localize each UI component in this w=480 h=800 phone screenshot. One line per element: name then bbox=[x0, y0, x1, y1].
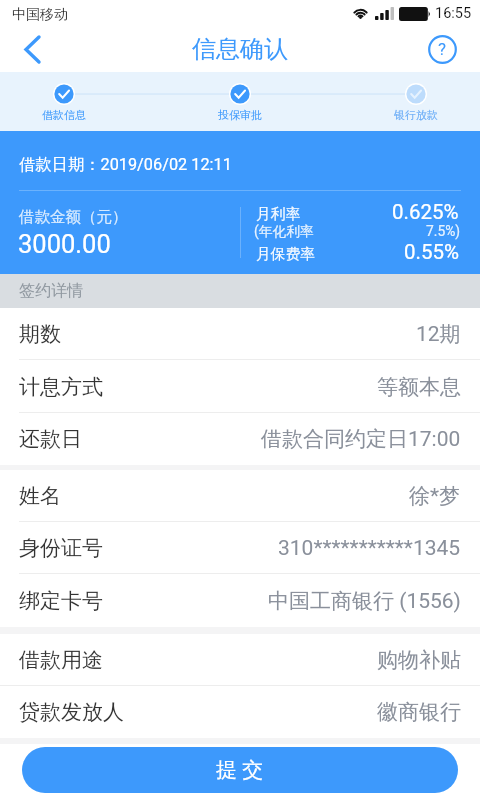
staticText: 310***********1345 bbox=[278, 536, 461, 561]
staticText: 借款用途 bbox=[19, 647, 103, 673]
staticText: 月保费率 bbox=[256, 245, 315, 264]
staticText: 徐*梦 bbox=[409, 483, 461, 509]
staticText: 投保审批 bbox=[218, 108, 262, 122]
button[interactable]: 提 交 bbox=[22, 747, 458, 793]
button[interactable]: Back bbox=[0, 27, 52, 72]
staticText: ? bbox=[438, 39, 447, 59]
button[interactable]: 绑定卡号 bbox=[0, 574, 480, 627]
button[interactable]: 期数 bbox=[0, 308, 480, 360]
staticText: 提 交 bbox=[216, 757, 264, 783]
button[interactable]: 身份证号 bbox=[0, 522, 480, 574]
button[interactable]: 计息方式 bbox=[0, 360, 480, 413]
staticText: 借款信息 bbox=[42, 108, 86, 122]
staticText: 信息确认 bbox=[192, 34, 288, 64]
staticText: 期数 bbox=[19, 321, 61, 347]
staticText: 贷款发放人 bbox=[19, 699, 124, 725]
staticText: 0.55% bbox=[404, 240, 459, 264]
staticText: 身份证号 bbox=[19, 535, 103, 561]
staticText: 中国工商银行 (1556) bbox=[268, 588, 461, 614]
button[interactable]: 还款日 bbox=[0, 413, 480, 465]
staticText: 3000.00 bbox=[18, 229, 111, 259]
staticText: 徽商银行 bbox=[377, 699, 461, 725]
staticText: 0.625% bbox=[392, 200, 459, 224]
staticText: 中国移动 bbox=[12, 6, 68, 24]
staticText: 银行放款 bbox=[394, 108, 438, 122]
staticText: 签约详情 bbox=[19, 281, 83, 301]
button[interactable]: 姓名 bbox=[0, 470, 480, 522]
button[interactable]: 借款用途 bbox=[0, 634, 480, 686]
staticText: 还款日 bbox=[19, 426, 82, 452]
staticText: 12期 bbox=[416, 321, 461, 347]
staticText: 7.5%) bbox=[426, 223, 461, 239]
staticText: 计息方式 bbox=[19, 374, 103, 400]
staticText: (年化利率 bbox=[254, 223, 314, 240]
staticText: 16:55 bbox=[435, 5, 472, 22]
staticText: 月利率 bbox=[256, 205, 301, 224]
button[interactable]: 贷款发放人 bbox=[0, 686, 480, 738]
staticText: 绑定卡号 bbox=[19, 588, 103, 614]
staticText: 等额本息 bbox=[377, 374, 461, 400]
staticText: 借款合同约定日17:00 bbox=[261, 426, 461, 452]
button[interactable]: Help bbox=[428, 27, 480, 72]
staticText: 姓名 bbox=[19, 483, 61, 509]
staticText: 购物补贴 bbox=[377, 647, 461, 673]
staticText: 借款金额（元） bbox=[19, 207, 128, 227]
staticText: 借款日期：2019/06/02 12:11 bbox=[19, 154, 232, 175]
